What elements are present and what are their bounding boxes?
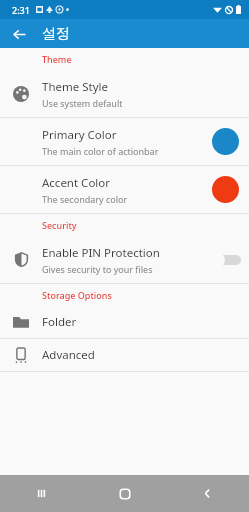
button[interactable]: Enable PIN Protection [0,236,249,283]
button[interactable]: Primary Color [0,118,249,165]
staticText: Folder [42,314,77,330]
staticText: The secondary color [42,193,128,205]
staticText: Enable PIN Protection [42,245,160,261]
staticText: Use system default [42,97,123,109]
button[interactable]: Back [6,21,32,47]
staticText: Primary Color [42,127,117,143]
button[interactable]: Recent apps [0,475,83,512]
staticText: 설정 [42,25,70,43]
staticText: Theme Style [42,79,108,95]
staticText: Storage Options [42,289,112,301]
staticText: The main color of actionbar [42,145,159,157]
button[interactable]: Home [83,475,166,512]
staticText: 2:31 [12,4,30,16]
button[interactable]: Advanced [0,339,249,371]
button[interactable]: Theme Style [0,70,249,117]
staticText: Accent Color [42,175,111,191]
button[interactable]: Accent Color [0,166,249,213]
button[interactable]: Folder [0,306,249,338]
staticText: Theme [42,53,72,65]
staticText: Gives security to your files [42,263,153,275]
staticText: Advanced [42,347,95,363]
button[interactable]: Back [166,475,249,512]
button[interactable]: Enable PIN Protection toggle [209,252,241,268]
staticText: Security [42,219,77,231]
